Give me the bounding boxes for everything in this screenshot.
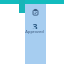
button[interactable]: Approved tasks — [31, 8, 39, 16]
staticText: 3 — [32, 20, 38, 29]
staticText: Approved — [25, 29, 44, 34]
button[interactable] — [25, 0, 46, 64]
